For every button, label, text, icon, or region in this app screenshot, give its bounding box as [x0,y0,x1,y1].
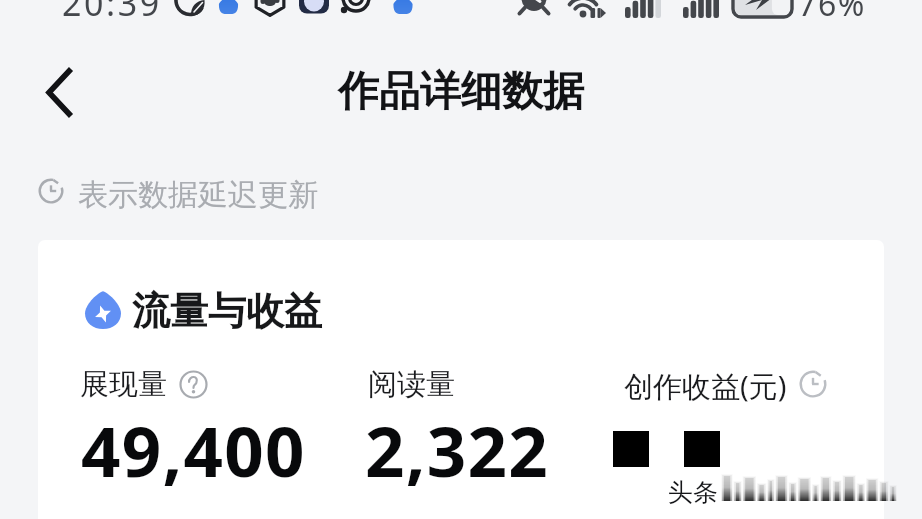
button[interactable]: 展现量 [80,366,167,403]
staticText: 头条 [668,477,718,508]
staticText: 作品详细数据 [0,66,922,118]
staticText: 2,322 [365,403,550,497]
button[interactable] [38,240,884,519]
button[interactable]: About impressions [179,370,208,399]
button[interactable]: Delayed data [799,370,827,398]
staticText: 20:39 [62,0,162,26]
staticText: 流量与收益 [132,287,322,335]
button[interactable]: Back [32,64,88,120]
staticText: 表示数据延迟更新 [78,176,318,214]
staticText: 49,400 [81,403,306,497]
staticText: 76% [798,0,867,26]
button[interactable]: 创作收益(元) [624,366,787,406]
button[interactable]: 阅读量 [368,366,455,403]
